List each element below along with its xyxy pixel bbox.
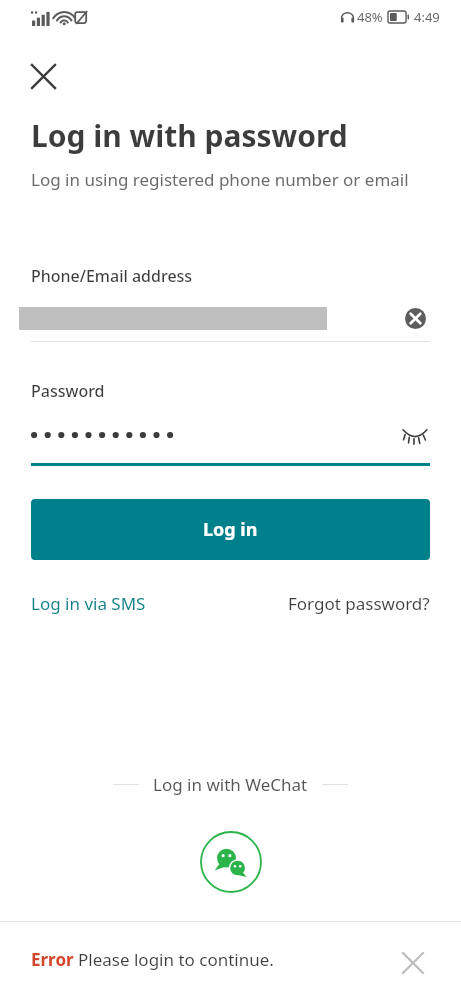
button[interactable]: Show password (391, 410, 439, 458)
staticText: Phone/Email address (31, 265, 193, 287)
button[interactable]: Log in via SMS (31, 588, 146, 619)
staticText: Log in (203, 517, 258, 542)
staticText: Log in via SMS (31, 592, 146, 615)
staticText: Forgot password? (288, 592, 430, 615)
button[interactable]: Log in (31, 499, 430, 560)
button[interactable]: Forgot password? (288, 588, 430, 619)
staticText: Log in with password (31, 115, 348, 156)
button[interactable]: Close (19, 52, 67, 100)
staticText: Error Please login to continue. (31, 948, 274, 971)
button[interactable]: Dismiss error (389, 939, 437, 987)
staticText: Password (31, 380, 105, 402)
staticText: Log in with WeChat (153, 773, 308, 796)
staticText: Log in using registered phone number or … (31, 168, 409, 191)
staticText: 4:49 (414, 8, 440, 26)
staticText: 48% (357, 8, 383, 26)
button[interactable]: Log in with WeChat (199, 830, 263, 894)
button[interactable]: Clear text (391, 294, 439, 342)
